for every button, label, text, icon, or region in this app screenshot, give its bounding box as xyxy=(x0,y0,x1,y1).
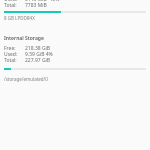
button[interactable]: Used: xyxy=(0,0,150,150)
staticText: 8 GB LPDDR4X xyxy=(4,15,35,21)
staticText: Total: xyxy=(4,2,17,9)
staticText: Total: xyxy=(4,57,17,64)
staticText: 227.97 GiB xyxy=(25,57,51,64)
staticText: 3113 MiB 40% xyxy=(25,0,60,3)
staticText: 218.38 GiB xyxy=(25,45,51,52)
staticText: Used: xyxy=(4,51,18,58)
staticText: 7783 MiB xyxy=(25,2,47,9)
staticText: Internal Storage xyxy=(4,35,44,42)
staticText: Free: xyxy=(4,45,16,52)
staticText: Used: xyxy=(4,0,18,3)
staticText: 9.59 GiB 4% xyxy=(25,51,53,58)
staticText: /storage/emulated/0 xyxy=(4,76,48,82)
